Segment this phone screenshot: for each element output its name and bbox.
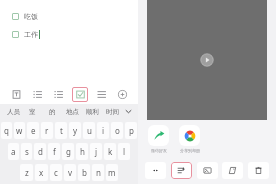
staticText: 微信好友: [151, 148, 167, 153]
button[interactable]: h: [76, 143, 88, 160]
staticText: y: [73, 125, 78, 136]
button[interactable]: 人员: [4, 104, 23, 119]
button[interactable]: q: [1, 122, 12, 139]
button[interactable]: 工作: [12, 28, 40, 41]
staticText: m: [108, 167, 116, 178]
staticText: 的: [49, 108, 56, 116]
button[interactable]: u: [83, 122, 95, 139]
staticText: 室: [29, 108, 36, 116]
button[interactable]: p: [125, 122, 137, 139]
staticText: 人员: [7, 108, 20, 116]
button[interactable]: Text format: [8, 87, 24, 102]
button[interactable]: f: [48, 143, 60, 160]
staticText: 吃饭: [24, 12, 38, 21]
button[interactable]: Photos: [179, 125, 200, 146]
button[interactable]: z: [20, 164, 33, 181]
staticText: u: [87, 125, 92, 136]
staticText: q: [4, 125, 9, 136]
staticText: k: [108, 146, 113, 157]
button[interactable]: 地点: [62, 104, 82, 119]
staticText: 时间: [106, 108, 119, 116]
staticText: d: [38, 146, 43, 157]
button[interactable]: e: [27, 122, 39, 139]
button[interactable]: m: [106, 164, 118, 181]
button[interactable]: d: [34, 143, 46, 160]
staticText: w: [16, 125, 23, 136]
button[interactable]: t: [55, 122, 67, 139]
button[interactable]: y: [69, 122, 81, 139]
button[interactable]: o: [111, 122, 123, 139]
button[interactable]: 的: [42, 104, 62, 119]
staticText: 工作: [24, 30, 38, 39]
staticText: n: [96, 167, 101, 178]
button[interactable]: Checklist: [72, 87, 88, 102]
button[interactable]: Image: [197, 162, 218, 179]
button[interactable]: n: [92, 164, 104, 181]
staticText: p: [129, 125, 134, 136]
staticText: e: [31, 125, 36, 136]
staticText: 分享到相册: [180, 148, 200, 153]
button[interactable]: i: [97, 122, 109, 139]
button[interactable]: Tag: [222, 162, 243, 179]
button[interactable]: s: [21, 143, 32, 160]
button[interactable]: g: [62, 143, 74, 160]
button[interactable]: 室: [23, 104, 42, 119]
staticText: x: [39, 167, 44, 178]
staticText: t: [60, 125, 63, 136]
staticText: i: [102, 125, 105, 136]
staticText: 顺利: [86, 108, 99, 116]
staticText: s: [25, 146, 29, 157]
staticText: j: [95, 146, 98, 157]
button[interactable]: More candidates: [122, 104, 134, 119]
button[interactable]: x: [35, 164, 48, 181]
staticText: g: [66, 146, 71, 157]
staticText: l: [123, 146, 126, 157]
staticText: h: [80, 146, 85, 157]
button[interactable]: 顺利: [82, 104, 102, 119]
button[interactable]: k: [104, 143, 116, 160]
button[interactable]: Bulleted list: [29, 87, 45, 102]
staticText: o: [115, 125, 120, 136]
button[interactable]: 吃饭: [12, 10, 38, 23]
button[interactable]: Share: [148, 125, 169, 146]
button[interactable]: Delete: [248, 162, 269, 179]
button[interactable]: 时间: [102, 104, 122, 119]
button[interactable]: Align: [93, 87, 109, 102]
button[interactable]: c: [50, 164, 62, 181]
button[interactable]: l: [118, 143, 130, 160]
button[interactable]: a: [8, 143, 19, 160]
staticText: f: [53, 146, 56, 157]
button[interactable]: r: [41, 122, 53, 139]
button[interactable]: Play: [200, 53, 214, 67]
staticText: b: [82, 167, 87, 178]
button[interactable]: Add: [114, 87, 130, 102]
button[interactable]: w: [14, 122, 25, 139]
staticText: a: [11, 146, 16, 157]
staticText: z: [25, 167, 29, 178]
button[interactable]: More: [145, 162, 166, 179]
button[interactable]: Checklist: [171, 162, 192, 179]
staticText: v: [68, 167, 73, 178]
button[interactable]: b: [78, 164, 90, 181]
staticText: 地点: [66, 108, 79, 116]
staticText: r: [45, 125, 49, 136]
button[interactable]: Numbered list: [50, 87, 66, 102]
button[interactable]: v: [64, 164, 76, 181]
staticText: c: [54, 167, 58, 178]
button[interactable]: j: [90, 143, 102, 160]
